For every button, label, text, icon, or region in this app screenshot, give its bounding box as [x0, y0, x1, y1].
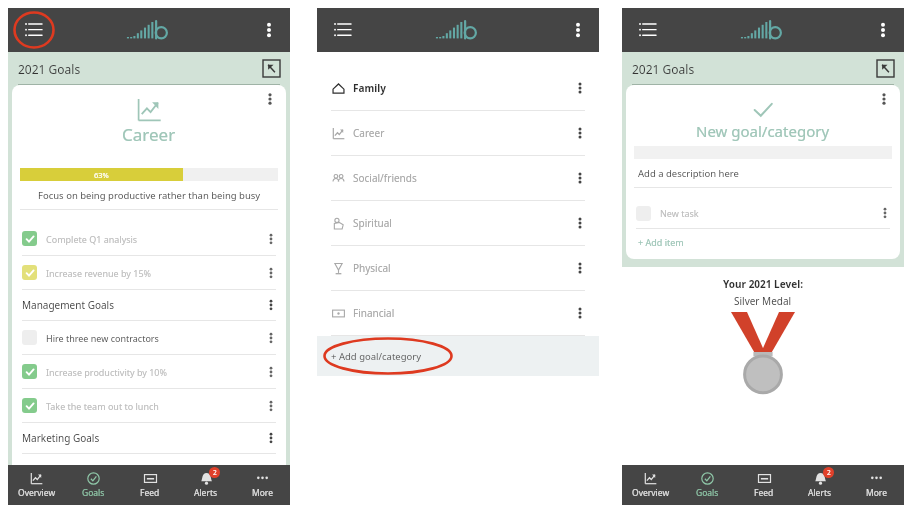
- staticText: More: [252, 487, 273, 499]
- staticText: New task: [660, 207, 876, 219]
- button[interactable]: New task: [626, 198, 900, 228]
- staticText: Increase revenue by 15%: [46, 267, 262, 279]
- button[interactable]: Overview: [8, 465, 65, 505]
- staticText: 2021 Goals: [18, 61, 81, 77]
- staticText: Career: [353, 126, 571, 140]
- staticText: Silver Medal: [734, 294, 792, 308]
- button[interactable]: Social/friends: [317, 156, 599, 200]
- button[interactable]: Category options: [571, 169, 589, 187]
- staticText: 2: [827, 468, 831, 477]
- button[interactable]: Take the team out to lunch: [12, 389, 286, 422]
- staticText: 2021 Goals: [632, 61, 695, 77]
- button[interactable]: Category options: [571, 214, 589, 232]
- button[interactable]: 2: [178, 465, 234, 505]
- staticText: Career: [122, 123, 176, 146]
- button[interactable]: Task options: [262, 397, 280, 415]
- staticText: Management Goals: [22, 298, 262, 312]
- staticText: Goals: [696, 487, 719, 499]
- button[interactable]: Task options: [262, 329, 280, 347]
- button[interactable]: Section options: [262, 296, 280, 314]
- button[interactable]: Menu: [630, 13, 664, 47]
- button[interactable]: Category options: [571, 304, 589, 322]
- button[interactable]: Overview: [622, 465, 679, 505]
- staticText: Social/friends: [353, 171, 571, 185]
- button[interactable]: Category options: [571, 79, 589, 97]
- staticText: Physical: [353, 261, 571, 275]
- button[interactable]: Card options: [874, 89, 894, 109]
- staticText: 63%: [94, 170, 109, 180]
- button[interactable]: More: [848, 465, 904, 505]
- staticText: Marketing Goals: [22, 431, 262, 445]
- staticText: More: [866, 487, 887, 499]
- button[interactable]: Management Goals: [12, 290, 286, 320]
- button[interactable]: Task options: [262, 264, 280, 282]
- button[interactable]: Complete Q1 analysis: [12, 222, 286, 255]
- button[interactable]: Collapse: [263, 60, 280, 77]
- staticText: Goals: [82, 487, 105, 499]
- button[interactable]: + Add goal/category: [317, 336, 599, 376]
- staticText: Add a description here: [638, 167, 739, 180]
- button[interactable]: Hire three new contractors: [12, 321, 286, 354]
- button[interactable]: Family: [317, 66, 599, 110]
- staticText: Complete Q1 analysis: [46, 233, 262, 245]
- button[interactable]: More options: [256, 17, 282, 43]
- staticText: Family: [353, 81, 571, 95]
- button[interactable]: Feed: [736, 465, 792, 505]
- staticText: Spiritual: [353, 216, 571, 230]
- staticText: Overview: [18, 487, 56, 499]
- staticText: New goal/category: [696, 121, 830, 141]
- button[interactable]: Task options: [262, 363, 280, 381]
- staticText: Hire three new contractors: [46, 332, 262, 344]
- staticText: + Add item: [638, 236, 684, 248]
- staticText: Increase productivity by 10%: [46, 366, 262, 378]
- button[interactable]: 2: [792, 465, 848, 505]
- button[interactable]: More: [234, 465, 290, 505]
- button[interactable]: + Add item: [626, 229, 900, 255]
- button[interactable]: Collapse: [877, 60, 894, 77]
- button[interactable]: Section options: [262, 429, 280, 447]
- button[interactable]: Menu: [16, 13, 50, 47]
- staticText: 2: [213, 468, 217, 477]
- button[interactable]: Feed: [122, 465, 178, 505]
- button[interactable]: Task options: [876, 204, 894, 222]
- staticText: Focus on being productive rather than be…: [38, 189, 261, 202]
- button[interactable]: Card options: [260, 89, 280, 109]
- button[interactable]: Task options: [262, 230, 280, 248]
- staticText: Feed: [140, 487, 160, 499]
- staticText: Take the team out to lunch: [46, 400, 262, 412]
- button[interactable]: Goals: [65, 465, 122, 505]
- button[interactable]: Menu: [325, 13, 359, 47]
- button[interactable]: Marketing Goals: [12, 423, 286, 453]
- staticText: Overview: [632, 487, 670, 499]
- button[interactable]: Physical: [317, 246, 599, 290]
- staticText: + Add goal/category: [331, 350, 422, 363]
- button[interactable]: Financial: [317, 291, 599, 335]
- staticText: Alerts: [808, 487, 832, 499]
- button[interactable]: More options: [870, 17, 896, 43]
- button[interactable]: Career: [317, 111, 599, 155]
- button[interactable]: More options: [565, 17, 591, 43]
- button[interactable]: Category options: [571, 124, 589, 142]
- staticText: Your 2021 Level:: [723, 277, 803, 291]
- staticText: Financial: [353, 306, 571, 320]
- button[interactable]: Category options: [571, 259, 589, 277]
- button[interactable]: Spiritual: [317, 201, 599, 245]
- button[interactable]: Increase revenue by 15%: [12, 256, 286, 289]
- button[interactable]: Goals: [679, 465, 736, 505]
- button[interactable]: Increase productivity by 10%: [12, 355, 286, 388]
- staticText: Feed: [754, 487, 774, 499]
- staticText: Alerts: [194, 487, 218, 499]
